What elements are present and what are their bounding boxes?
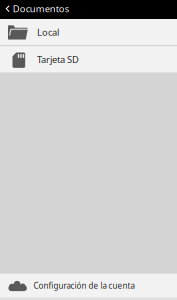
button[interactable]: Tarjeta SD xyxy=(0,46,177,74)
staticText: Local xyxy=(37,26,59,38)
staticText: Configuración de la cuenta xyxy=(33,280,134,291)
button[interactable]: Documentos xyxy=(0,0,177,19)
staticText: Documentos xyxy=(13,2,69,15)
button[interactable]: Local xyxy=(0,19,177,46)
button[interactable]: Configuración de la cuenta xyxy=(0,273,177,300)
staticText: Tarjeta SD xyxy=(37,53,79,66)
